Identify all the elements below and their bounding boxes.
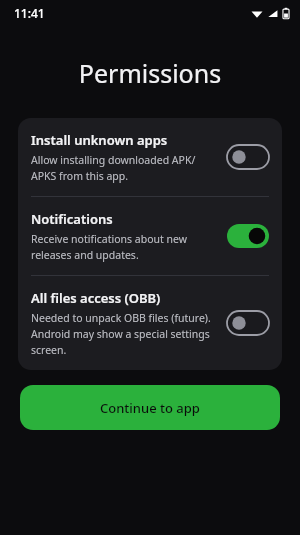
button[interactable]: Notifications <box>18 197 282 275</box>
staticText: All files access (OBB) <box>31 289 161 307</box>
staticText: Notifications <box>31 210 113 228</box>
staticText: screen. <box>31 343 67 357</box>
staticText: APKS from this app. <box>31 169 129 183</box>
button[interactable]: Toggle off <box>227 145 269 169</box>
staticText: Continue to app <box>100 399 200 417</box>
staticText: Needed to unpack OBB files (future). <box>31 311 211 325</box>
staticText: 11:41 <box>14 5 45 21</box>
button[interactable]: Continue to app <box>20 385 280 430</box>
button[interactable]: Toggle on <box>227 224 269 248</box>
staticText: Allow installing downloaded APK/ <box>31 153 196 167</box>
button[interactable]: All files access (OBB) <box>18 276 282 370</box>
staticText: Receive notifications about new <box>31 232 187 246</box>
staticText: Install unknown apps <box>31 131 168 149</box>
button[interactable]: Install unknown apps <box>18 118 282 196</box>
button[interactable]: Toggle off <box>227 311 269 335</box>
staticText: releases and updates. <box>31 248 139 262</box>
staticText: Android may show a special settings <box>31 327 210 341</box>
staticText: Permissions <box>0 56 300 90</box>
